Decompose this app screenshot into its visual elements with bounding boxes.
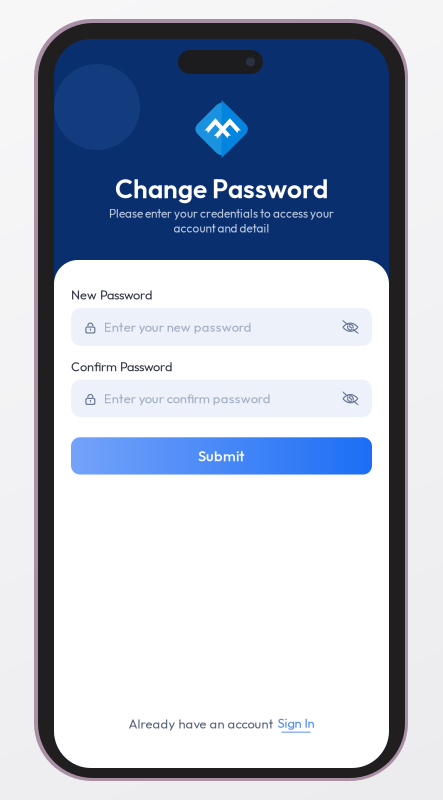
- staticText: account and detail: [173, 221, 269, 236]
- button[interactable]: Enter your confirm password: [71, 380, 372, 417]
- staticText: Enter your new password: [104, 319, 252, 335]
- staticText: Confirm Password: [71, 358, 172, 375]
- staticText: Already have an account: [128, 716, 273, 732]
- staticText: Submit: [198, 447, 245, 465]
- button[interactable]: Enter your new password: [71, 308, 372, 346]
- staticText: Sign In: [277, 715, 314, 731]
- staticText: Enter your confirm password: [104, 390, 271, 407]
- staticText: Please enter your credentials to access …: [109, 206, 334, 221]
- staticText: New Password: [71, 287, 152, 303]
- button[interactable]: Sign In: [277, 715, 314, 733]
- button[interactable]: Submit: [71, 437, 372, 475]
- staticText: Change Password: [115, 172, 328, 205]
